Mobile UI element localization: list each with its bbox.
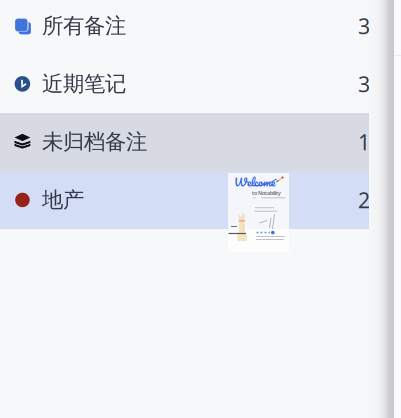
- staticText: Welcome: [234, 172, 275, 191]
- button[interactable]: 地产: [0, 171, 378, 229]
- staticText: 地产: [42, 187, 84, 213]
- staticText: 2: [358, 186, 370, 214]
- staticText: 未归档备注: [42, 129, 147, 155]
- button[interactable]: 近期笔记: [0, 55, 378, 113]
- staticText: 1: [358, 128, 370, 156]
- button[interactable]: 未归档备注: [0, 113, 378, 171]
- staticText: 3: [358, 12, 370, 40]
- staticText: 近期笔记: [42, 71, 126, 97]
- staticText: 3: [358, 70, 370, 98]
- staticText: to Notability: [252, 189, 281, 197]
- button[interactable]: 所有备注: [0, 0, 378, 55]
- staticText: 所有备注: [42, 13, 126, 39]
